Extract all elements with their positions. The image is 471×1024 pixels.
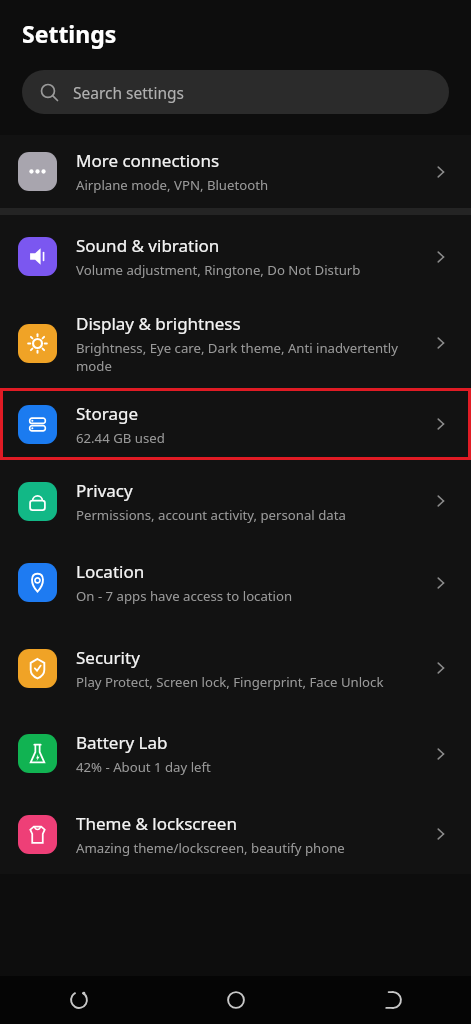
staticText: Airplane mode, VPN, Bluetooth	[76, 176, 269, 194]
staticText: Privacy	[76, 479, 133, 502]
button[interactable]: More connections	[0, 135, 471, 208]
button[interactable]: Storage	[0, 388, 471, 460]
staticText: Search settings	[73, 82, 184, 103]
staticText: Display & brightness	[76, 312, 241, 335]
staticText: Amazing theme/lockscreen, beautify phone	[76, 839, 345, 857]
button[interactable]: Theme & lockscreen	[0, 794, 471, 874]
staticText: 62.44 GB used	[76, 429, 165, 447]
button[interactable]: Sound & vibration	[0, 215, 471, 298]
staticText: More connections	[76, 149, 220, 172]
staticText: Sound & vibration	[76, 234, 220, 257]
button[interactable]: Back	[314, 976, 471, 1024]
staticText: Storage	[76, 402, 139, 425]
button[interactable]: Battery Lab	[0, 713, 471, 794]
staticText: Security	[76, 646, 140, 669]
staticText: Play Protect, Screen lock, Fingerprint, …	[76, 673, 384, 691]
staticText: Theme & lockscreen	[76, 812, 237, 835]
button[interactable]: Display & brightness	[0, 298, 471, 388]
staticText: 42% - About 1 day left	[76, 758, 211, 776]
staticText: Volume adjustment, Ringtone, Do Not Dist…	[76, 261, 361, 279]
staticText: Battery Lab	[76, 731, 168, 754]
staticText: Settings	[22, 18, 117, 49]
button[interactable]: Location	[0, 542, 471, 623]
button[interactable]: Privacy	[0, 460, 471, 542]
button[interactable]: Security	[0, 623, 471, 713]
button[interactable]: Recents	[0, 976, 157, 1024]
button[interactable]: Search settings	[22, 70, 449, 114]
button[interactable]: Home	[157, 976, 314, 1024]
staticText: Brightness, Eye care, Dark theme, Anti i…	[76, 339, 421, 375]
staticText: Location	[76, 560, 145, 583]
staticText: Permissions, account activity, personal …	[76, 506, 346, 524]
staticText: On - 7 apps have access to location	[76, 587, 293, 605]
